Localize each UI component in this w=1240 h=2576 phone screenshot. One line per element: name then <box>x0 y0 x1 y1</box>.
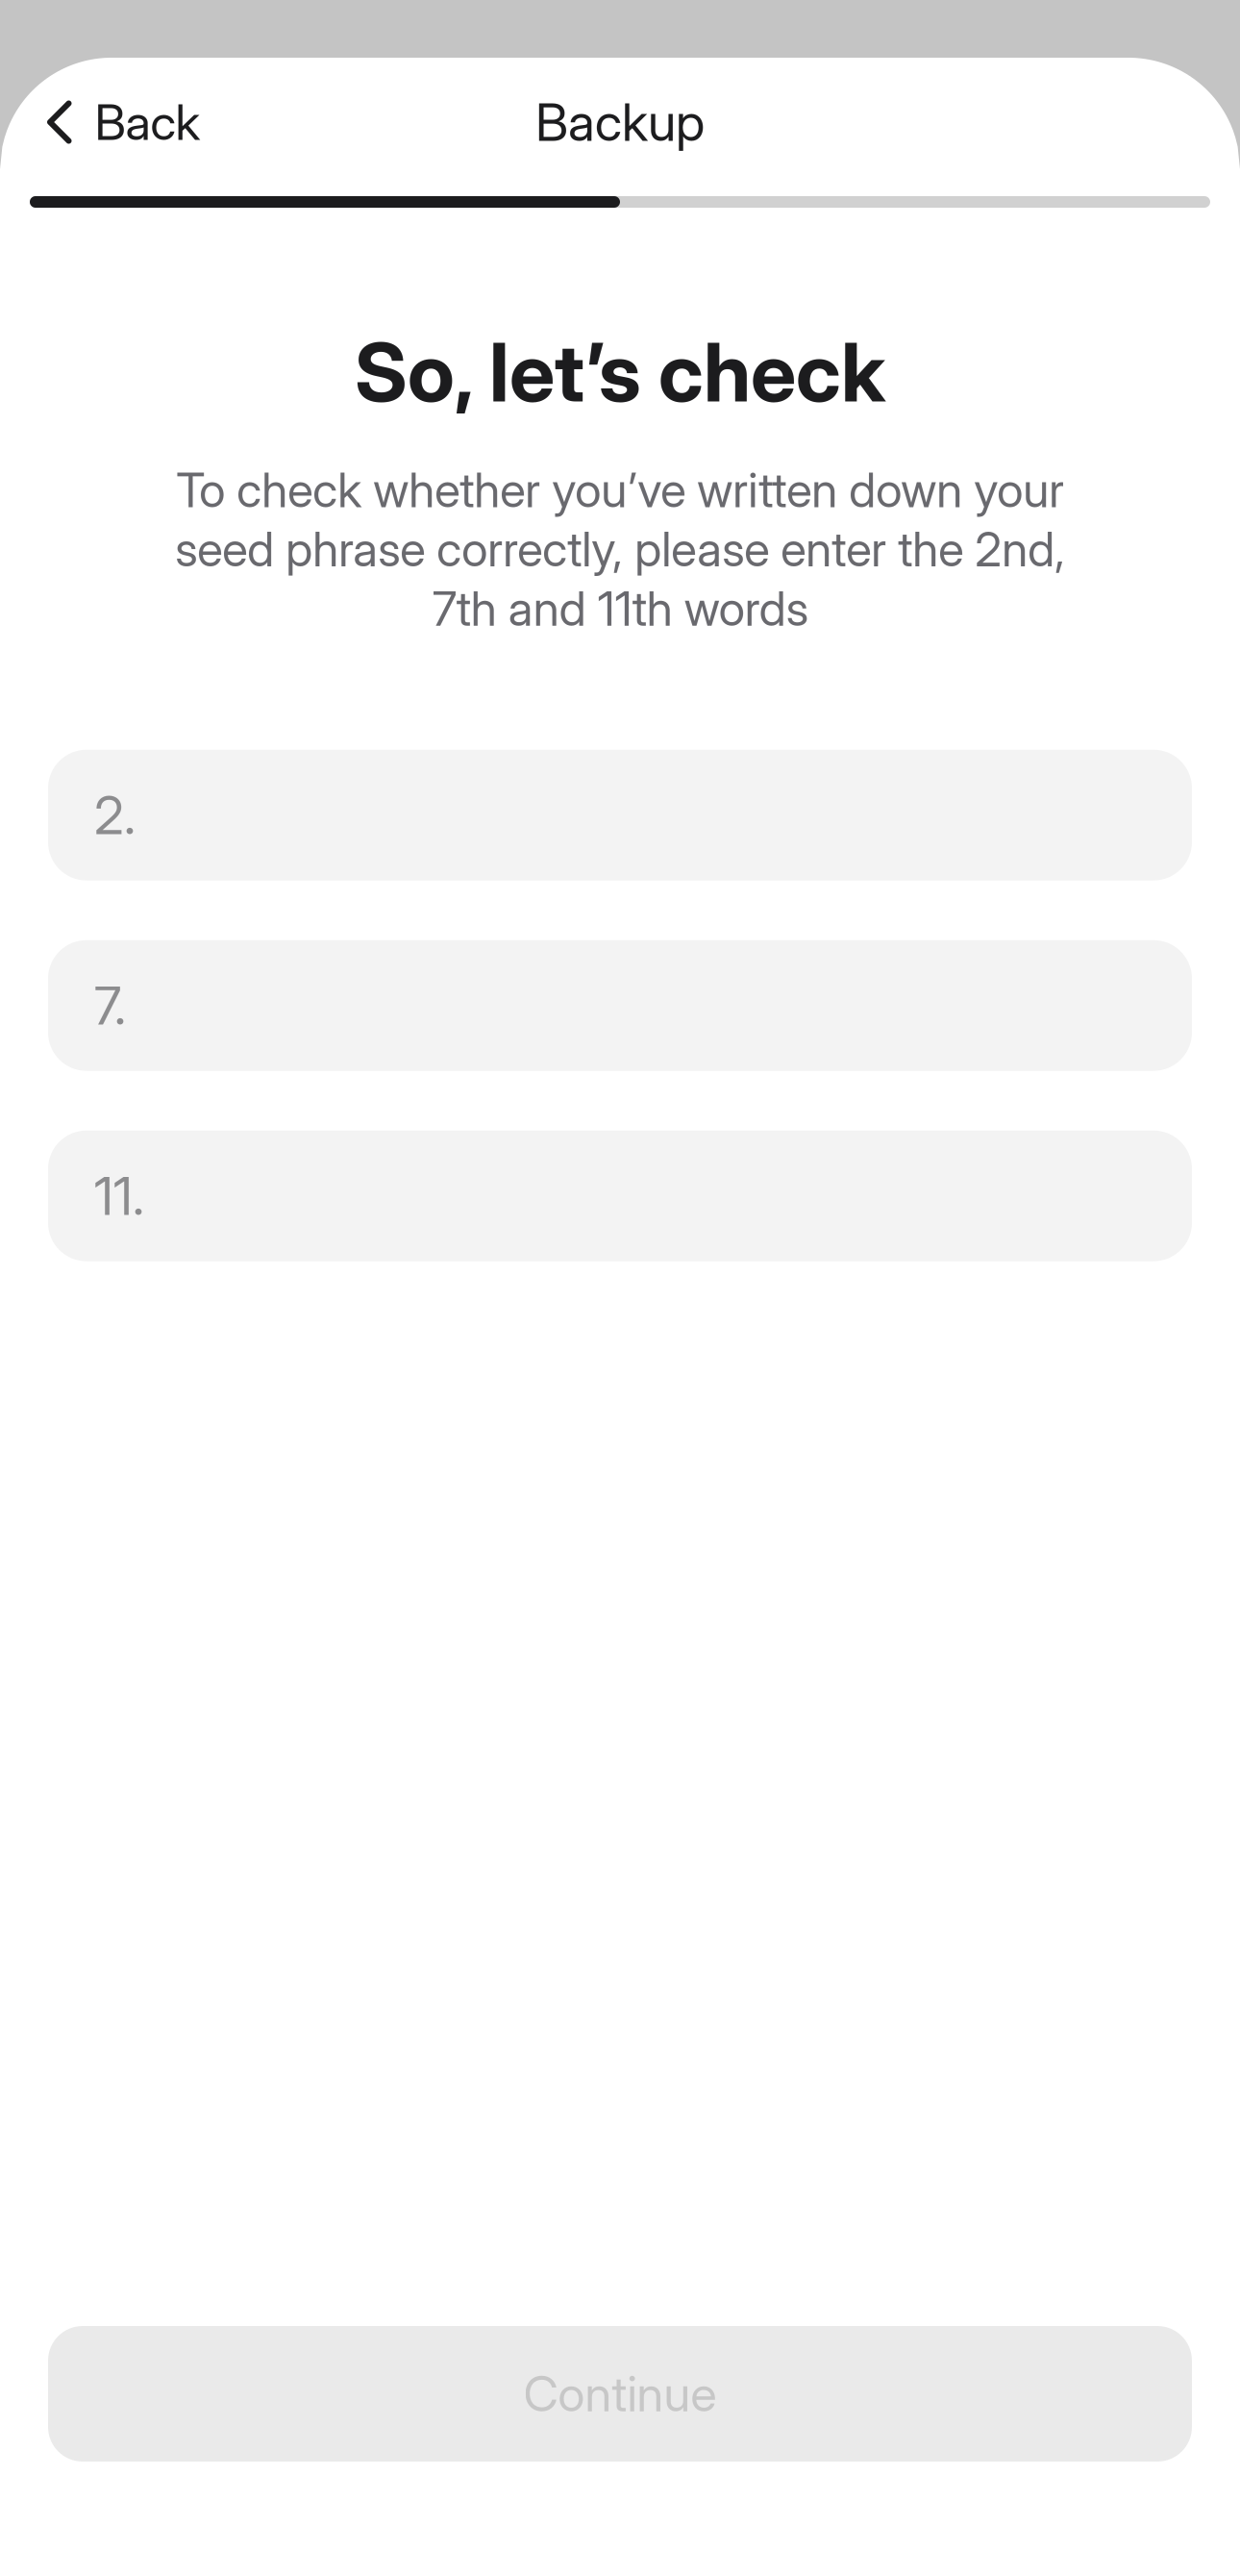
staticText: 7. <box>94 974 126 1037</box>
button[interactable]: Continue <box>48 2326 1192 2462</box>
staticText: Back <box>95 93 200 152</box>
button[interactable]: Back <box>0 79 223 165</box>
staticText: Continue <box>523 2364 717 2423</box>
staticText: To check whether you’ve written down you… <box>175 461 1065 637</box>
button[interactable]: Word 2 <box>48 750 1192 880</box>
staticText: Backup <box>535 91 705 153</box>
button[interactable]: Word 11 <box>48 1130 1192 1261</box>
staticText: 11. <box>94 1164 144 1228</box>
staticText: So, let’s check <box>355 323 885 421</box>
staticText: 2. <box>94 783 136 847</box>
button[interactable]: Word 7 <box>48 940 1192 1071</box>
